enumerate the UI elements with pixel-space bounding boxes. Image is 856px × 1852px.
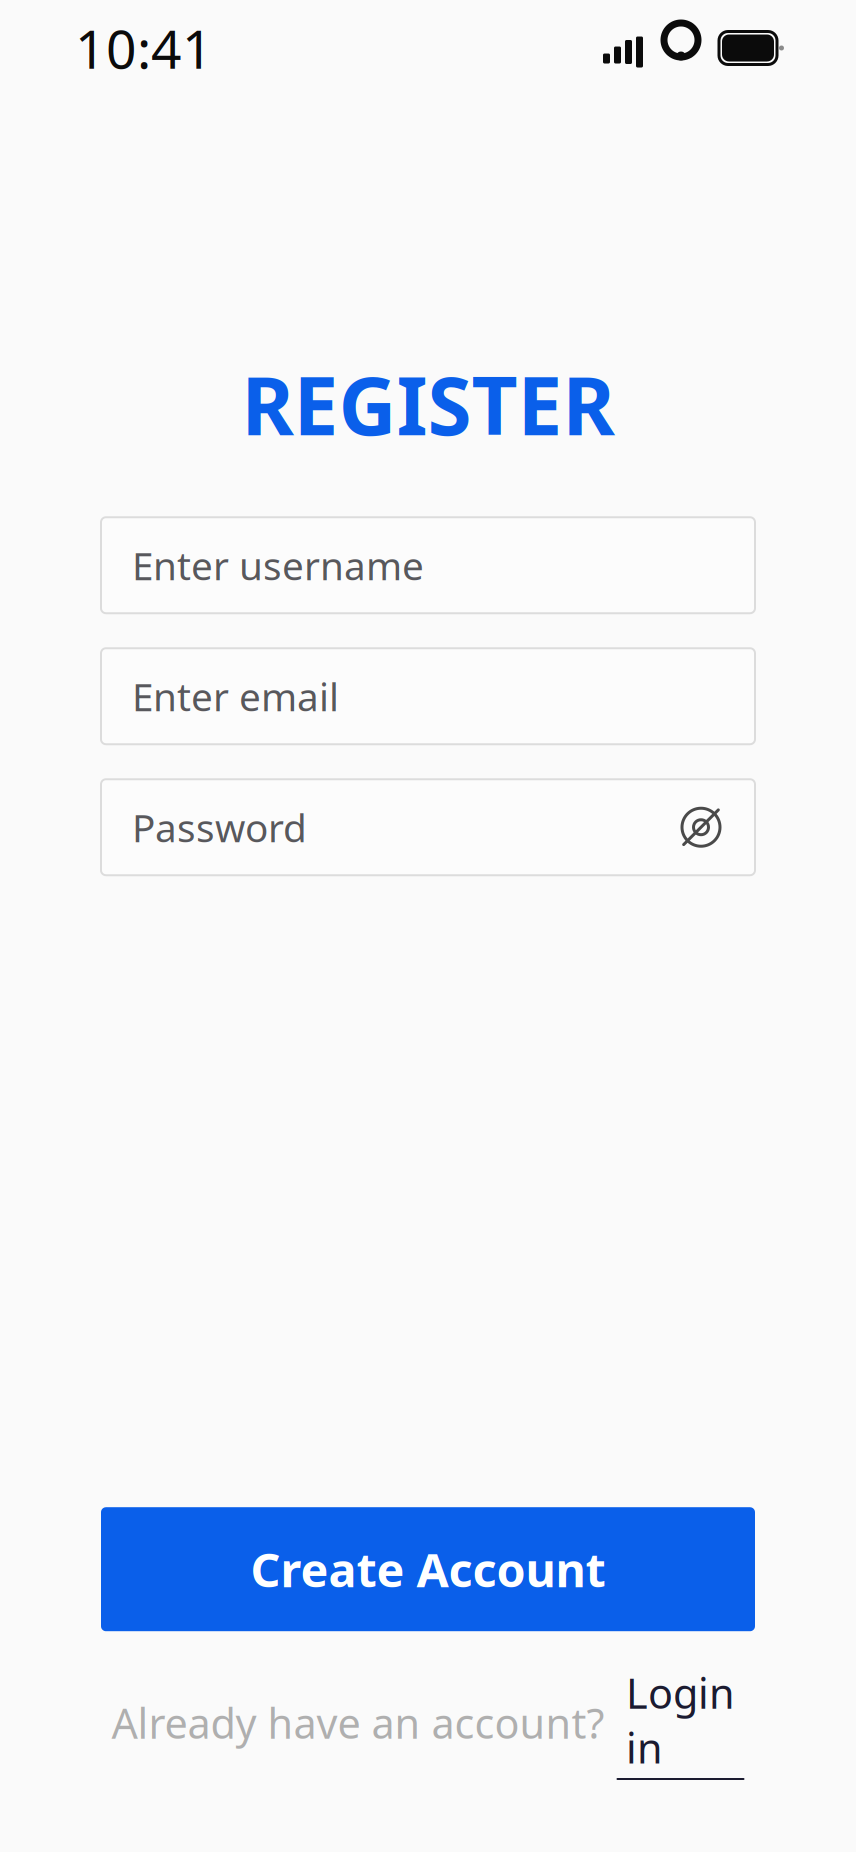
button[interactable]: Login in xyxy=(616,1665,744,1780)
staticText: REGISTER xyxy=(241,351,614,457)
staticText: Already have an account? xyxy=(111,1695,604,1750)
staticText: 10:41 xyxy=(75,13,213,83)
staticText: Password xyxy=(132,802,307,853)
staticText: Create Account xyxy=(250,1538,605,1600)
staticText: Enter username xyxy=(132,540,424,591)
button[interactable]: Create Account xyxy=(101,1507,755,1631)
button[interactable]: Enter username xyxy=(101,517,755,613)
button[interactable]: Password xyxy=(101,779,755,875)
staticText: Login in xyxy=(626,1665,735,1775)
button[interactable]: Enter email xyxy=(101,648,755,744)
staticText: Enter email xyxy=(132,671,339,722)
